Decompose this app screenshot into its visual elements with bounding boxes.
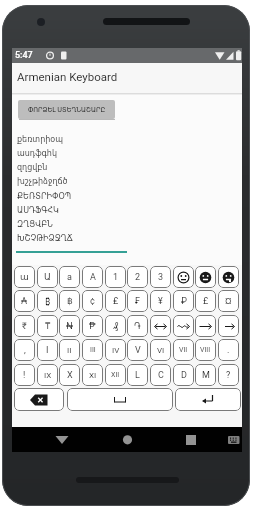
button[interactable]: [224, 427, 242, 452]
button[interactable]: a: [59, 266, 80, 288]
button[interactable]: [48, 427, 76, 452]
button[interactable]: V: [127, 339, 148, 361]
staticText: XI: [89, 371, 97, 380]
button[interactable]: ¢: [82, 290, 103, 312]
staticText: զղցվբն: [17, 163, 48, 172]
button[interactable]: M: [195, 364, 216, 386]
button[interactable]: [218, 315, 239, 337]
staticText: M: [202, 370, 210, 381]
button[interactable]: ա: [14, 266, 35, 288]
button[interactable]: ₰: [105, 315, 126, 337]
staticText: 2: [135, 272, 141, 283]
staticText: խշչթիձջղճծ: [17, 177, 68, 186]
staticText: 1: [113, 272, 119, 283]
button[interactable]: .: [218, 339, 239, 361]
staticText: ₿: [45, 295, 51, 307]
button[interactable]: [175, 388, 241, 411]
staticText: ₱: [89, 321, 96, 332]
staticText: !: [23, 370, 26, 381]
button[interactable]: XI: [82, 364, 103, 386]
staticText: L: [135, 370, 140, 381]
staticText: ₤: [113, 296, 119, 307]
staticText: ₳: [21, 296, 28, 307]
staticText: ₹: [22, 321, 27, 332]
button[interactable]: ₣: [127, 290, 148, 312]
staticText: IV: [112, 346, 120, 355]
button[interactable]: IX: [37, 364, 58, 386]
button[interactable]: [67, 388, 173, 411]
button[interactable]: D: [173, 364, 194, 386]
staticText: V: [135, 345, 141, 356]
button[interactable]: VII: [173, 339, 194, 361]
staticText: C: [158, 370, 164, 381]
button[interactable]: !: [14, 364, 35, 386]
staticText: ՓՈՐՁԵԼ ՍՏԵՂՆԱՇԱՐԸ: [28, 106, 106, 114]
button[interactable]: I: [37, 339, 58, 361]
button[interactable]: ₿: [37, 290, 58, 312]
button[interactable]: VIII: [195, 339, 216, 361]
staticText: IX: [44, 371, 52, 380]
button[interactable]: ֏: [127, 315, 148, 337]
staticText: a: [67, 272, 72, 283]
button[interactable]: ՓՈՐՁԵԼ ՍՏԵՂՆԱՇԱՐԸ: [18, 100, 115, 119]
staticText: ¤: [225, 296, 232, 307]
button[interactable]: ₤: [105, 290, 126, 312]
button[interactable]: [195, 315, 216, 337]
staticText: 5:47: [15, 50, 33, 61]
button[interactable]: ₳: [14, 290, 35, 312]
button[interactable]: ₸: [37, 315, 58, 337]
button[interactable]: VI: [150, 339, 171, 361]
button[interactable]: ¥: [150, 290, 171, 312]
staticText: 3: [158, 272, 164, 283]
staticText: ₦: [66, 321, 74, 332]
button[interactable]: [150, 315, 171, 337]
staticText: ₽: [181, 296, 187, 307]
button[interactable]: C: [150, 364, 171, 386]
button[interactable]: ,: [14, 339, 35, 361]
staticText: ասդֆգհկ: [17, 149, 58, 158]
button[interactable]: IV: [105, 339, 126, 361]
staticText: ₰: [113, 321, 119, 332]
staticText: ฿: [67, 296, 73, 306]
staticText: ՔԵՌՏՐԻՓՕՊ: [17, 192, 72, 201]
button[interactable]: [177, 427, 205, 452]
staticText: ԶՂՑՎԲՆ: [17, 220, 53, 229]
button[interactable]: ₦: [59, 315, 80, 337]
staticText: ¥: [158, 296, 163, 307]
button[interactable]: £: [195, 290, 216, 312]
button[interactable]: A: [82, 266, 103, 288]
button[interactable]: II: [59, 339, 80, 361]
staticText: ?: [226, 370, 231, 381]
staticText: ա: [20, 272, 29, 282]
button[interactable]: 2: [127, 266, 148, 288]
button[interactable]: [173, 315, 194, 337]
staticText: ԽՇՉԹԻՁՋՂՃ: [17, 234, 73, 243]
button[interactable]: ?: [218, 364, 239, 386]
button[interactable]: [173, 266, 194, 288]
button[interactable]: 3: [150, 266, 171, 288]
button[interactable]: ฿: [59, 290, 80, 312]
button[interactable]: [218, 266, 239, 288]
button[interactable]: ₱: [82, 315, 103, 337]
staticText: VI: [157, 346, 165, 355]
button[interactable]: L: [127, 364, 148, 386]
staticText: II: [67, 346, 72, 355]
staticText: Ա: [44, 272, 51, 282]
button[interactable]: III: [82, 339, 103, 361]
staticText: ԱՍԴՖԳՀԿ: [17, 206, 59, 215]
button[interactable]: 1: [105, 266, 126, 288]
button[interactable]: [113, 427, 141, 452]
staticText: .: [227, 345, 230, 356]
button[interactable]: [195, 266, 216, 288]
button[interactable]: Ա: [37, 266, 58, 288]
staticText: քեռտրիօպ: [17, 135, 63, 144]
staticText: ¢: [90, 296, 95, 307]
button[interactable]: ₹: [14, 315, 35, 337]
button[interactable]: XII: [105, 364, 126, 386]
button[interactable]: ₽: [173, 290, 194, 312]
staticText: XII: [111, 371, 120, 379]
button[interactable]: [14, 388, 64, 411]
button[interactable]: ¤: [218, 290, 239, 312]
staticText: I: [46, 345, 49, 356]
button[interactable]: X: [59, 364, 80, 386]
